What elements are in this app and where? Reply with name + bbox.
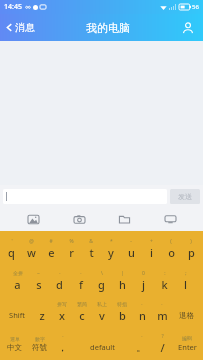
button[interactable]: % (61, 233, 81, 263)
button[interactable]: 消息 (0, 17, 40, 38)
button[interactable]: ~ (28, 265, 49, 295)
staticText: · (141, 333, 143, 340)
button[interactable]: : (154, 265, 175, 295)
button[interactable]: · (152, 296, 172, 326)
staticText: # (49, 238, 53, 245)
button[interactable]: ' (2, 233, 21, 263)
staticText: e (48, 245, 55, 260)
button[interactable]: 數字 (27, 328, 52, 358)
button[interactable]: ( (161, 233, 181, 263)
staticText: v (99, 308, 105, 323)
staticText: b (119, 308, 126, 323)
button[interactable]: 发送 (170, 189, 200, 204)
staticText: · (161, 301, 163, 308)
staticText: 56 (192, 3, 199, 11)
button[interactable]: * (101, 233, 121, 263)
button[interactable]: Contact profile (176, 16, 200, 40)
staticText: Enter (178, 342, 197, 352)
staticText: f (79, 277, 83, 292)
button[interactable]: 0 (133, 265, 154, 295)
button[interactable]: · (52, 328, 73, 358)
staticText: g (98, 277, 105, 292)
staticText: - (130, 238, 132, 245)
button[interactable]: 退格 (172, 296, 201, 326)
staticText: 全拼 (13, 270, 23, 276)
staticText: 繁简 (77, 301, 87, 307)
staticText: c (79, 308, 85, 323)
button[interactable]: 選单 (2, 328, 27, 358)
staticText: q (8, 245, 15, 260)
staticText: 數字 (35, 336, 45, 342)
staticText: & (89, 238, 93, 245)
button[interactable]: 拼写 (52, 296, 72, 326)
staticText: 消息 (15, 21, 35, 34)
staticText: 拼写 (57, 301, 67, 307)
staticText: ( (170, 238, 172, 245)
staticText: x (59, 308, 65, 323)
staticText: 編輯 (182, 335, 192, 341)
button[interactable]: ; (175, 265, 196, 295)
staticText: 0 (142, 270, 145, 277)
staticText: 退格 (179, 311, 194, 320)
staticText: a (14, 277, 21, 292)
staticText: ? (161, 333, 164, 340)
staticText: o (168, 245, 175, 260)
staticText: + (150, 238, 153, 245)
button[interactable]: @ (21, 233, 41, 263)
staticText: r (69, 245, 74, 260)
button[interactable]: · (49, 265, 70, 295)
button[interactable]: Remote desktop (158, 207, 182, 231)
button[interactable]: Take photo (67, 207, 91, 231)
button[interactable]: · (131, 328, 152, 358)
staticText: z (39, 308, 45, 323)
staticText: d (56, 277, 63, 292)
button[interactable]: Files (112, 207, 136, 231)
staticText: 符號 (32, 343, 47, 352)
staticText: · (80, 270, 82, 277)
staticText: h (119, 277, 126, 292)
staticText: \ (101, 270, 103, 277)
button[interactable] (3, 189, 167, 204)
staticText: k (161, 277, 168, 292)
button[interactable]: & (81, 233, 101, 263)
staticText: ) (190, 238, 192, 245)
staticText: 中文 (7, 343, 22, 352)
button[interactable]: default (73, 328, 131, 358)
button[interactable]: - (121, 233, 141, 263)
button[interactable]: · (132, 296, 152, 326)
staticText: m (157, 308, 168, 323)
staticText: i (150, 245, 153, 260)
button[interactable]: # (41, 233, 61, 263)
staticText: · (62, 333, 64, 340)
staticText: Shift (9, 310, 25, 320)
staticText: * (110, 238, 113, 245)
staticText: @ (29, 238, 34, 245)
staticText: w (27, 245, 36, 260)
button[interactable]: 特指 (112, 296, 132, 326)
staticText: j (142, 277, 145, 292)
button[interactable]: 編輯 (173, 328, 201, 358)
button[interactable]: z (32, 296, 52, 326)
staticText: 。 (136, 340, 147, 354)
staticText: p (188, 245, 195, 260)
button[interactable]: | (112, 265, 133, 295)
button[interactable]: ) (181, 233, 201, 263)
button[interactable]: 全拼 (7, 265, 28, 295)
button[interactable]: + (141, 233, 161, 263)
staticText: : (164, 270, 166, 277)
staticText: / (160, 340, 165, 355)
button[interactable]: 私上 (92, 296, 112, 326)
button[interactable]: ? (152, 328, 173, 358)
button[interactable]: Shift (2, 296, 32, 326)
staticText: 发送 (178, 192, 192, 201)
staticText: ; (185, 270, 187, 277)
staticText: n (139, 308, 146, 323)
button[interactable]: \ (91, 265, 112, 295)
button[interactable]: Send image (21, 207, 45, 231)
button[interactable]: 繁简 (72, 296, 92, 326)
staticText: 特指 (117, 301, 127, 307)
button[interactable]: · (70, 265, 91, 295)
staticText: default (90, 342, 115, 352)
staticText: u (128, 245, 135, 260)
staticText: l (184, 277, 187, 292)
